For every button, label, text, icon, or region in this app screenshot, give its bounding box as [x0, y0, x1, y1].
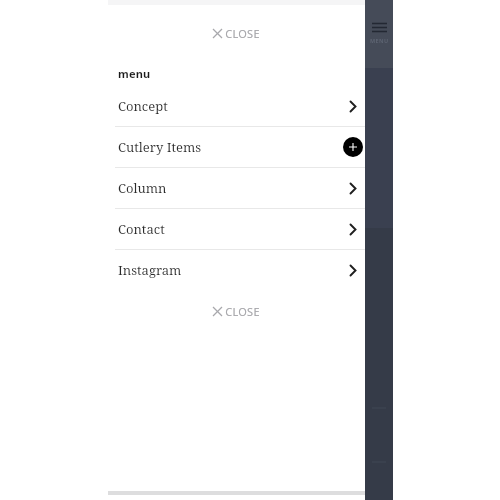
staticText: Instagram: [118, 261, 182, 279]
button[interactable]: Column: [112, 168, 369, 208]
button[interactable]: Menu: [365, 0, 393, 68]
button[interactable]: CLOSE: [207, 302, 266, 321]
staticText: Cutlery Items: [118, 138, 202, 156]
button[interactable]: Cutlery Items: [112, 127, 369, 167]
staticText: MENU: [370, 37, 389, 44]
button[interactable]: CLOSE: [207, 24, 266, 43]
button[interactable]: Concept: [112, 86, 369, 126]
staticText: Concept: [118, 97, 168, 115]
staticText: CLOSE: [225, 304, 260, 319]
staticText: Contact: [118, 220, 165, 238]
staticText: Column: [118, 179, 167, 197]
staticText: CLOSE: [225, 26, 260, 41]
button[interactable]: Instagram: [112, 250, 369, 290]
button[interactable]: Contact: [112, 209, 369, 249]
staticText: menu: [118, 66, 151, 81]
